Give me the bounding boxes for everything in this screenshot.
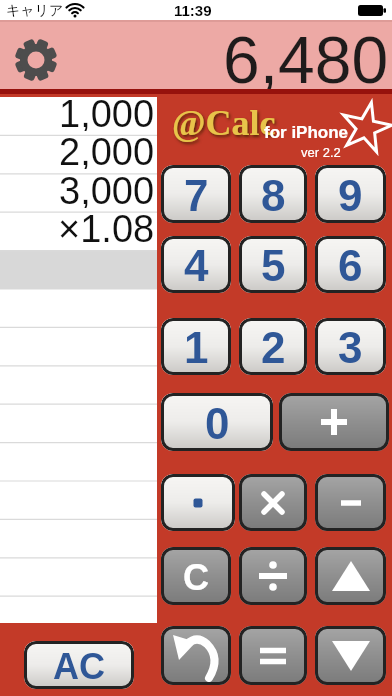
staticText: 1 — [184, 323, 209, 372]
button[interactable] — [315, 547, 386, 605]
button[interactable]: 3 — [315, 318, 386, 375]
staticText: 9 — [338, 171, 363, 220]
button[interactable]: 1,000 — [0, 97, 155, 135]
staticText: for iPhone — [264, 123, 349, 142]
staticText: 3,000 — [59, 170, 155, 208]
button[interactable]: 8 — [239, 165, 307, 223]
button[interactable]: 9 — [315, 165, 386, 223]
button[interactable]: C — [161, 547, 231, 605]
button[interactable]: 6 — [315, 236, 386, 293]
button[interactable] — [239, 547, 307, 605]
staticText: AC — [53, 646, 105, 686]
button[interactable]: 0 — [161, 393, 273, 451]
button[interactable] — [161, 474, 235, 531]
staticText: 1,000 — [59, 93, 155, 131]
button[interactable] — [239, 474, 307, 531]
staticText: 2,000 — [59, 131, 155, 169]
staticText: 6 — [338, 241, 363, 290]
button[interactable]: 1 — [161, 318, 231, 375]
staticText: 6,480 — [223, 23, 389, 92]
button[interactable]: ×1.08 — [0, 212, 155, 250]
button[interactable]: 3,000 — [0, 174, 155, 212]
button[interactable]: 5 — [239, 236, 307, 293]
button[interactable] — [279, 393, 389, 451]
staticText: 0 — [205, 399, 230, 448]
staticText: ver 2.2 — [301, 145, 341, 160]
button[interactable]: AC — [24, 641, 134, 689]
button[interactable] — [161, 626, 231, 685]
staticText: 2 — [261, 323, 286, 372]
staticText: 4 — [184, 241, 209, 290]
button[interactable]: 4 — [161, 236, 231, 293]
staticText: @Calc — [172, 103, 276, 143]
staticText: 3 — [338, 323, 363, 372]
staticText: 5 — [261, 241, 286, 290]
staticText: 11:39 — [174, 2, 212, 19]
staticText: 7 — [184, 171, 209, 220]
button[interactable]: 7 — [161, 165, 231, 223]
button[interactable]: 2 — [239, 318, 307, 375]
button[interactable]: 2,000 — [0, 135, 155, 173]
staticText: C — [183, 557, 209, 597]
staticText: ×1.08 — [58, 208, 155, 246]
staticText: キャリア — [6, 2, 64, 20]
staticText: 8 — [261, 171, 286, 220]
button[interactable] — [239, 626, 307, 685]
button[interactable] — [315, 626, 386, 685]
button[interactable] — [315, 474, 386, 531]
